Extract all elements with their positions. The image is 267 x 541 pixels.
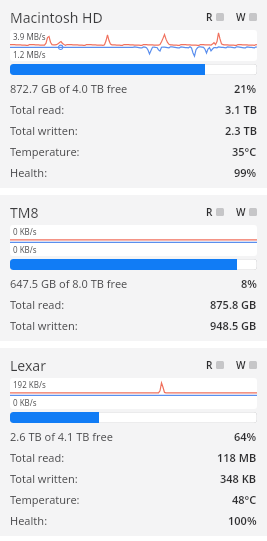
staticText: Macintosh HD xyxy=(10,8,103,27)
staticText: 0 KB/s xyxy=(13,397,37,408)
staticText: 21% xyxy=(234,81,257,96)
staticText: 872.7 GB of 4.0 TB free xyxy=(10,81,128,96)
staticText: Total written: xyxy=(10,318,78,333)
staticText: Lexar xyxy=(10,356,46,375)
staticText: Total read: xyxy=(10,297,65,312)
staticText: 348 KB xyxy=(220,471,257,486)
button[interactable]: 647.5 GB of 8.0 TB free xyxy=(10,273,257,294)
staticText: 192 KB/s xyxy=(13,379,46,390)
staticText: 2.3 TB xyxy=(225,123,257,138)
staticText: 64% xyxy=(234,429,257,444)
staticText: 2.6 TB of 4.1 TB free xyxy=(10,429,113,444)
button[interactable]: Total written: xyxy=(10,468,257,489)
button[interactable]: TM8 xyxy=(0,195,267,341)
button[interactable]: Read activity xyxy=(206,10,224,24)
button[interactable]: Total read: xyxy=(10,99,257,120)
button[interactable]: Read activity xyxy=(206,205,224,219)
button[interactable]: Write activity xyxy=(236,358,257,372)
staticText: Total read: xyxy=(10,450,65,465)
staticText: 1.2 MB/s xyxy=(13,49,46,60)
button[interactable]: Total read: xyxy=(10,447,257,468)
button[interactable]: Temperature: xyxy=(10,141,257,162)
staticText: 3.9 MB/s xyxy=(13,31,46,42)
staticText: 100% xyxy=(228,513,257,528)
button[interactable]: Write activity xyxy=(236,10,257,24)
button[interactable]: 872.7 GB of 4.0 TB free xyxy=(10,78,257,99)
button[interactable]: 2.6 TB of 4.1 TB free xyxy=(10,426,257,447)
button[interactable]: Total written: xyxy=(10,315,257,336)
staticText: 0 KB/s xyxy=(13,226,37,237)
staticText: 948.5 GB xyxy=(210,318,257,333)
staticText: 35°C xyxy=(232,144,257,159)
staticText: R xyxy=(206,10,213,24)
staticText: 0 KB/s xyxy=(13,244,37,255)
staticText: TM8 xyxy=(10,203,39,222)
staticText: Temperature: xyxy=(10,144,80,159)
staticText: Total written: xyxy=(10,471,78,486)
staticText: 647.5 GB of 8.0 TB free xyxy=(10,276,128,291)
button[interactable]: Health: xyxy=(10,510,257,531)
staticText: Temperature: xyxy=(10,492,80,507)
staticText: Total written: xyxy=(10,123,78,138)
staticText: Total read: xyxy=(10,102,65,117)
button[interactable]: Total written: xyxy=(10,120,257,141)
staticText: W xyxy=(236,10,246,24)
button[interactable]: Health: xyxy=(10,162,257,183)
button[interactable]: Total read: xyxy=(10,294,257,315)
staticText: 8% xyxy=(241,276,257,291)
staticText: 118 MB xyxy=(217,450,257,465)
staticText: W xyxy=(236,358,246,372)
button[interactable]: Macintosh HD xyxy=(0,0,267,188)
staticText: R xyxy=(206,358,213,372)
staticText: 48°C xyxy=(232,492,257,507)
staticText: W xyxy=(236,205,246,219)
staticText: 99% xyxy=(234,165,257,180)
button[interactable]: Temperature: xyxy=(10,489,257,510)
button[interactable]: Lexar xyxy=(0,348,267,536)
button[interactable]: Read activity xyxy=(206,358,224,372)
staticText: Health: xyxy=(10,513,48,528)
staticText: 3.1 TB xyxy=(225,102,257,117)
staticText: Health: xyxy=(10,165,48,180)
button[interactable]: Write activity xyxy=(236,205,257,219)
staticText: 875.8 GB xyxy=(210,297,257,312)
staticText: R xyxy=(206,205,213,219)
